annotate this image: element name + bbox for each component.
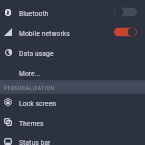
staticText: Lock screen: [19, 99, 57, 108]
button[interactable]: Data usage: [0, 42, 145, 62]
button[interactable]: Bluetooth: [0, 2, 145, 22]
staticText: Mobile networks: [19, 29, 70, 38]
button[interactable]: Lock screen: [0, 92, 145, 112]
button[interactable]: PERSONALIZATION: [0, 80, 145, 94]
staticText: PERSONALIZATION: [4, 85, 55, 92]
staticText: Themes: [19, 119, 44, 128]
staticText: Status bar: [19, 138, 51, 145]
button[interactable]: Switch off: [114, 7, 137, 17]
staticText: Data usage: [19, 49, 54, 58]
button[interactable]: Status bar: [0, 131, 145, 145]
button[interactable]: More...: [0, 62, 145, 82]
staticText: More...: [19, 69, 41, 78]
button[interactable]: Themes: [0, 112, 145, 132]
button[interactable]: Mobile networks: [0, 22, 145, 42]
staticText: Bluetooth: [19, 9, 49, 18]
button[interactable]: Switch on: [114, 27, 137, 37]
